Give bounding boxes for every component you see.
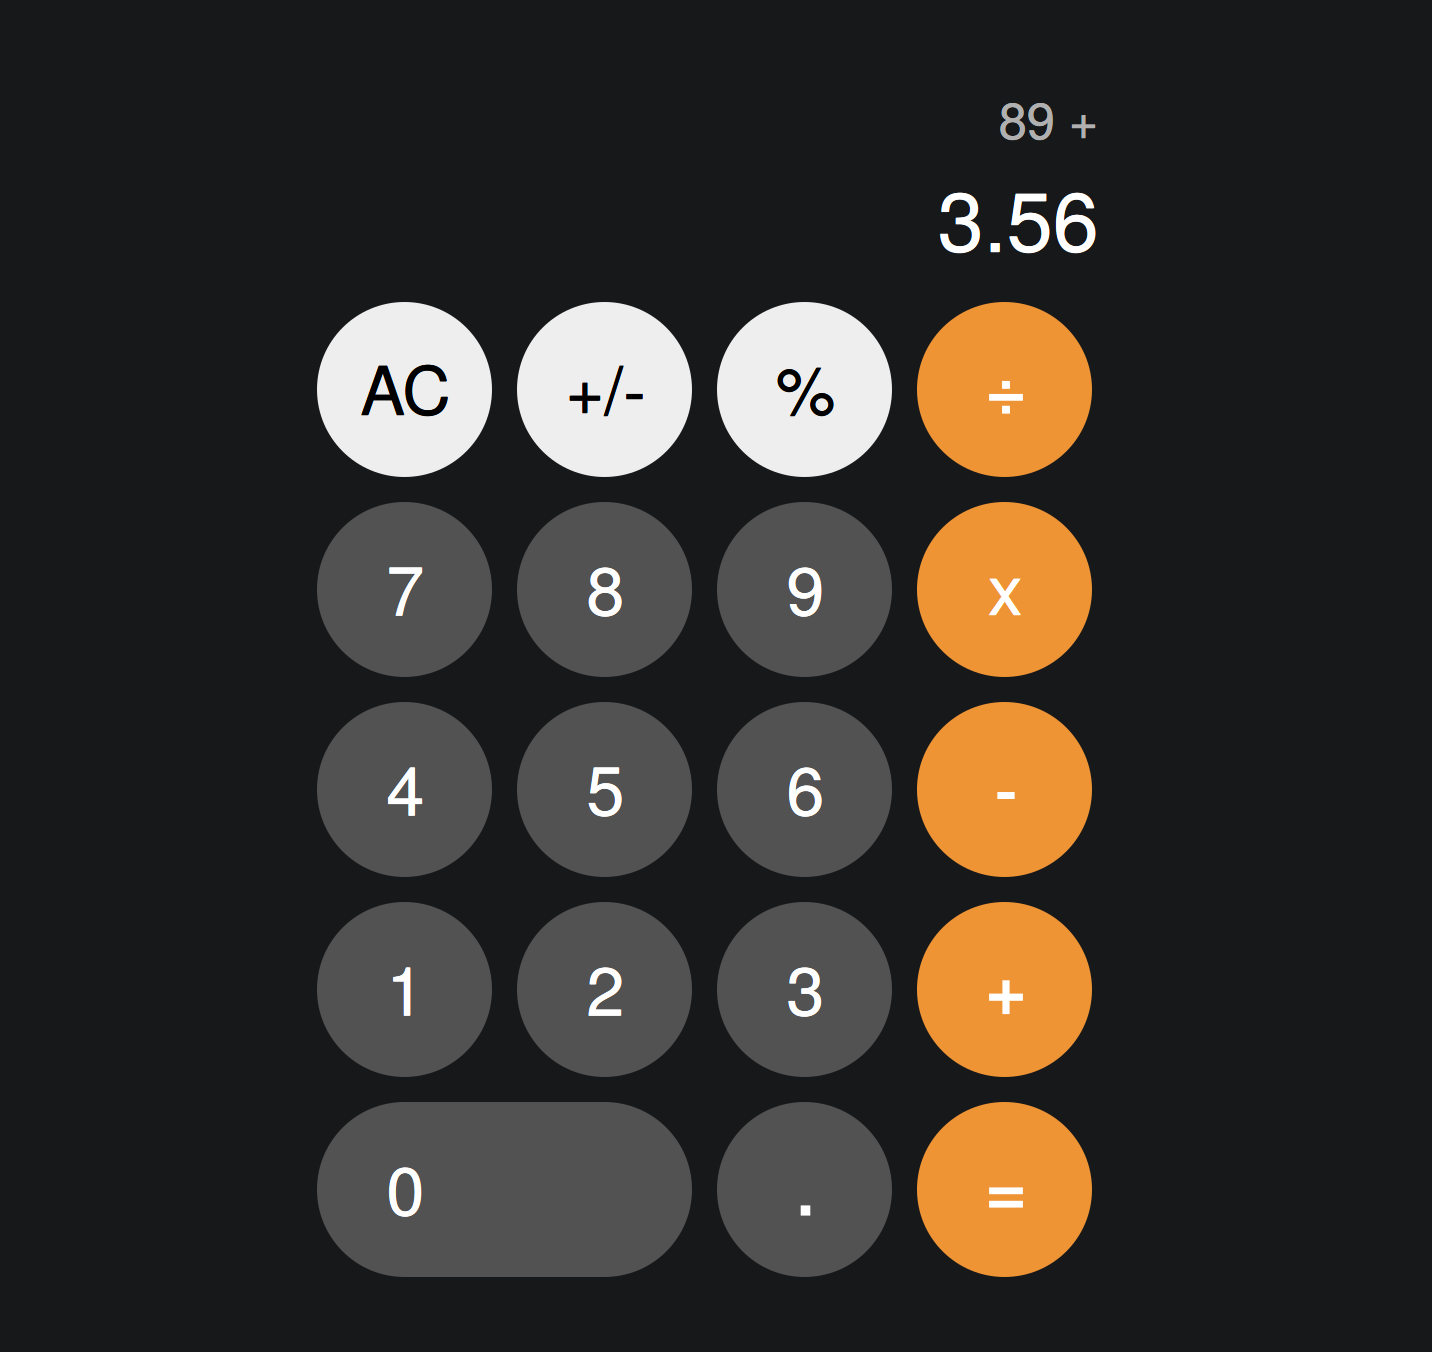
button[interactable]: 7 — [317, 502, 492, 677]
button[interactable]: 8 — [517, 502, 692, 677]
staticText: 6 — [786, 737, 824, 835]
button[interactable]: AC — [317, 302, 492, 477]
staticText: x — [988, 535, 1023, 634]
button[interactable]: 1 — [317, 902, 492, 1077]
button[interactable]: +/- — [517, 302, 692, 477]
button[interactable]: x — [917, 502, 1092, 677]
button[interactable]: 5 — [517, 702, 692, 877]
staticText: 3.56 — [937, 157, 1098, 275]
button[interactable]: 3 — [717, 902, 892, 1077]
button[interactable]: % — [717, 302, 892, 477]
staticText: 0 — [386, 1137, 424, 1235]
button[interactable]: 4 — [317, 702, 492, 877]
button[interactable]: 9 — [717, 502, 892, 677]
staticText: 4 — [386, 737, 424, 835]
staticText: 2 — [586, 937, 624, 1035]
button[interactable]: 6 — [717, 702, 892, 877]
staticText: AC — [360, 338, 450, 434]
staticText: 8 — [586, 537, 624, 635]
staticText: % — [776, 338, 835, 434]
staticText: 9 — [786, 537, 824, 635]
button[interactable]: Decimal point — [717, 1102, 892, 1277]
staticText: 5 — [586, 737, 624, 835]
staticText: 3 — [786, 937, 824, 1035]
staticText: 89 + — [998, 81, 1098, 153]
button[interactable]: 0 — [317, 1102, 692, 1277]
button[interactable]: Divide — [917, 302, 1092, 477]
staticText: +/- — [565, 338, 645, 434]
button[interactable]: Equals — [917, 1102, 1092, 1277]
button[interactable]: Add — [917, 902, 1092, 1077]
button[interactable]: Subtract — [917, 702, 1092, 877]
staticText: 7 — [386, 537, 424, 635]
staticText: 1 — [386, 937, 424, 1035]
button[interactable]: 2 — [517, 902, 692, 1077]
